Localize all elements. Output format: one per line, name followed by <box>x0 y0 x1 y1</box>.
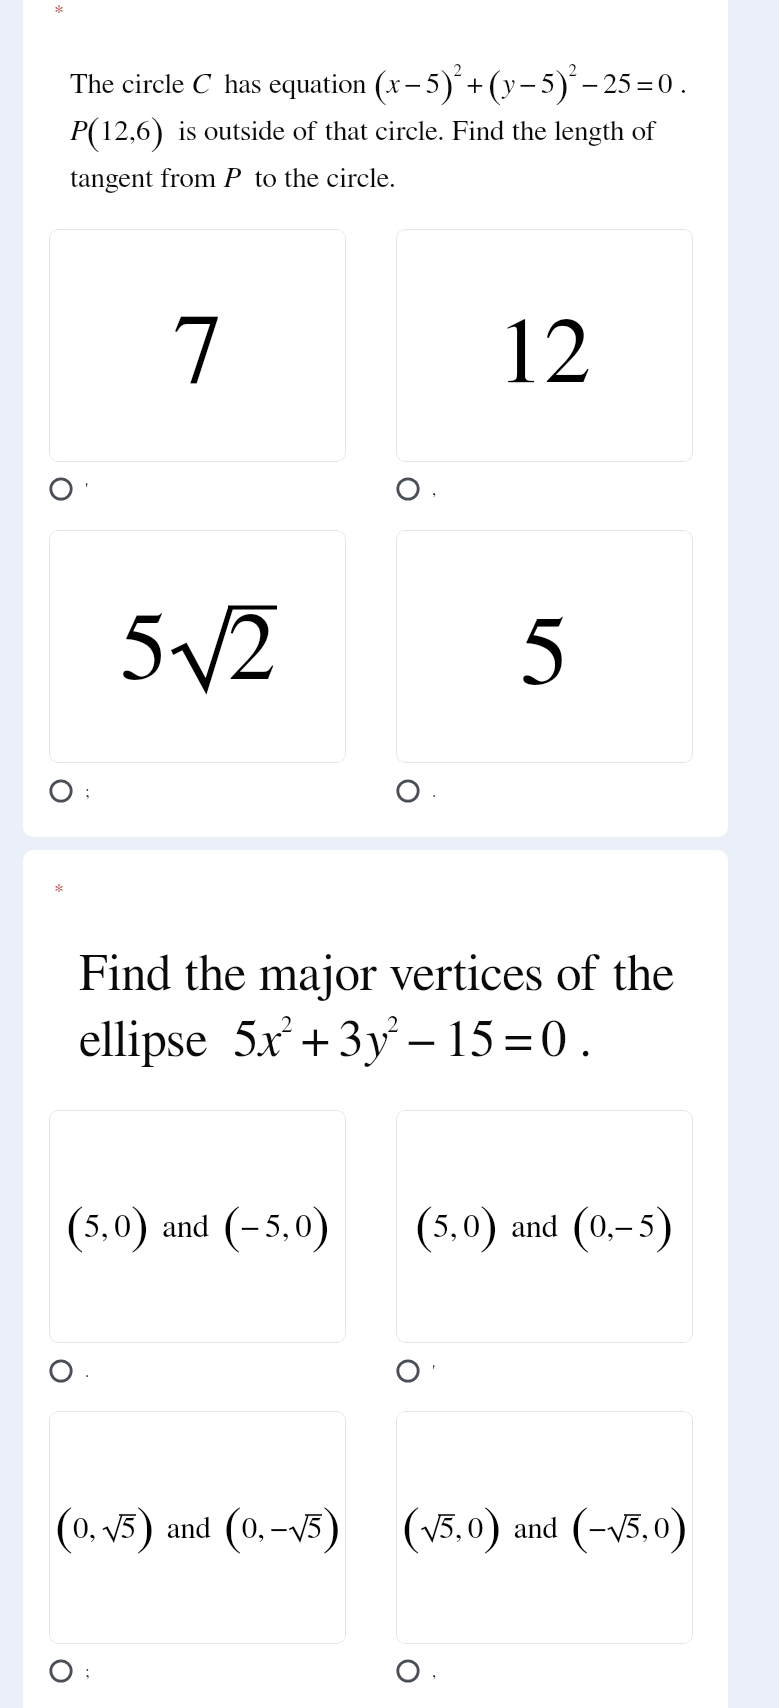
staticText: 7 <box>173 303 223 403</box>
button[interactable]: (5, 0) and (− 5, 0) <box>49 1110 346 1343</box>
staticText: Find the major vertices of the <box>79 949 675 1000</box>
button[interactable]: Answer option <box>396 1356 576 1386</box>
staticText: ; <box>85 783 90 800</box>
button[interactable]: (√5, 0) and (−√5, 0) <box>396 1411 693 1644</box>
staticText: ' <box>432 1363 436 1380</box>
staticText: (5, 0) and (− 5, 0) <box>66 1200 330 1254</box>
staticText: . <box>432 783 437 800</box>
button[interactable]: 7 <box>49 229 346 462</box>
staticText: (0, √5) and (0, −√5) <box>55 1501 341 1555</box>
button[interactable]: Answer option <box>396 474 576 504</box>
button[interactable]: (5, 0) and (0,− 5) <box>396 1110 693 1343</box>
staticText: ' <box>85 481 89 498</box>
button[interactable]: Answer option <box>396 776 576 806</box>
staticText: * <box>54 881 64 901</box>
button[interactable]: Answer option <box>49 1656 229 1686</box>
staticText: (5, 0) and (0,− 5) <box>415 1200 674 1254</box>
staticText: , <box>432 1663 437 1680</box>
staticText: P(12,6) is outside of that circle. Find … <box>70 113 657 153</box>
staticText: (√5, 0) and (−√5, 0) <box>402 1501 688 1555</box>
staticText: The circle C has equation (x − 5)2 + (y … <box>70 62 687 106</box>
button[interactable]: Answer option <box>49 1356 229 1386</box>
button[interactable]: 12 <box>396 229 693 462</box>
button[interactable]: Answer option <box>396 1656 576 1686</box>
staticText: tangent from P to the circle. <box>70 164 397 193</box>
button[interactable]: (0, √5) and (0, −√5) <box>49 1411 346 1644</box>
staticText: ellipse 5x2 + 3y2 − 15 = 0 . <box>79 1014 593 1066</box>
staticText: * <box>54 2 64 22</box>
staticText: 12 <box>497 307 592 401</box>
button[interactable]: Answer option <box>49 474 229 504</box>
staticText: ; <box>85 1663 90 1680</box>
staticText: , <box>432 481 437 498</box>
button[interactable]: Answer option <box>49 776 229 806</box>
button[interactable]: 5 <box>396 530 693 763</box>
staticText: 5√2 <box>120 602 276 698</box>
staticText: . <box>85 1363 90 1380</box>
button[interactable]: 5√2 <box>49 530 346 763</box>
staticText: 5 <box>520 606 570 704</box>
